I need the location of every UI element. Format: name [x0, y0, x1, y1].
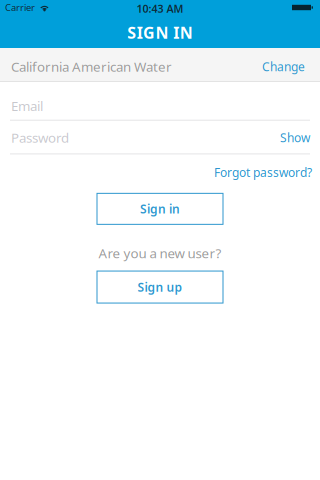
- button[interactable]: Show: [280, 130, 320, 145]
- staticText: Password: [11, 129, 69, 146]
- staticText: Show: [280, 130, 310, 145]
- staticText: Change: [262, 58, 305, 74]
- button[interactable]: Change: [262, 58, 320, 74]
- staticText: SIGN IN: [127, 22, 193, 43]
- staticText: Forgot password?: [214, 164, 312, 180]
- button[interactable]: Forgot password?: [214, 164, 320, 180]
- staticText: Sign up: [137, 279, 182, 295]
- staticText: Email: [11, 97, 43, 115]
- staticText: California American Water: [11, 58, 172, 75]
- staticText: 10:43 AM: [136, 1, 183, 16]
- staticText: Carrier: [5, 1, 35, 14]
- staticText: Are you a new user?: [98, 244, 221, 262]
- staticText: Sign in: [140, 201, 180, 217]
- button[interactable]: Sign up: [97, 271, 223, 303]
- button[interactable]: Sign in: [97, 193, 223, 224]
